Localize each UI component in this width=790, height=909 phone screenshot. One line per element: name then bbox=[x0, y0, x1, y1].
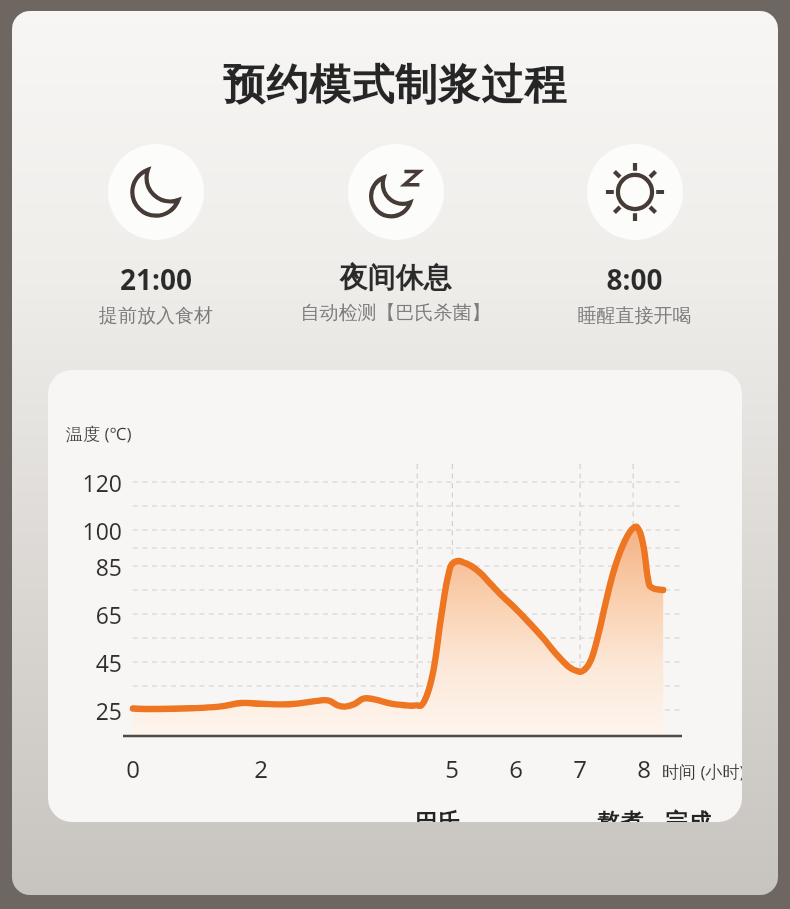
staticText: 2 bbox=[241, 752, 281, 785]
staticText: 85 bbox=[62, 551, 122, 582]
staticText: 睡醒直接开喝 bbox=[515, 304, 754, 328]
staticText: 8 bbox=[624, 752, 664, 785]
staticText: 65 bbox=[62, 599, 122, 630]
staticText: 0 bbox=[113, 752, 153, 785]
button[interactable]: Sleep mode detection bbox=[276, 144, 515, 325]
staticText: 巴氏 杀菌 bbox=[390, 808, 486, 822]
staticText: 100 bbox=[62, 515, 122, 546]
other: Morning ready bbox=[587, 144, 683, 240]
staticText: 时间 (小时) bbox=[662, 760, 742, 783]
staticText: 7 bbox=[560, 752, 600, 785]
staticText: 25 bbox=[62, 695, 122, 726]
button[interactable]: Morning ready bbox=[515, 144, 754, 328]
staticText: 预约模式制浆过程 bbox=[12, 59, 778, 112]
staticText: 夜间休息 bbox=[276, 260, 515, 295]
other: Sleep mode detection bbox=[348, 144, 444, 240]
staticText: 5 bbox=[432, 752, 472, 785]
staticText: 完成 保温 bbox=[640, 808, 736, 822]
staticText: 提前放入食材 bbox=[36, 304, 276, 328]
other: Night preparation bbox=[108, 144, 204, 240]
staticText: 熬煮 制浆 bbox=[572, 808, 668, 822]
staticText: 21:00 bbox=[36, 260, 276, 298]
staticText: 6 bbox=[496, 752, 536, 785]
staticText: 温度 (℃) bbox=[66, 422, 132, 445]
staticText: 45 bbox=[62, 647, 122, 678]
staticText: 自动检测【巴氏杀菌】 bbox=[276, 301, 515, 325]
staticText: 120 bbox=[62, 467, 122, 498]
button[interactable]: Night preparation bbox=[36, 144, 276, 328]
staticText: 8:00 bbox=[515, 260, 754, 298]
